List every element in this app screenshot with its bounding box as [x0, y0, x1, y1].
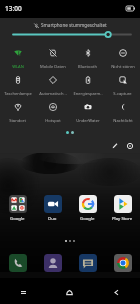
button[interactable]: Duo: [35, 195, 70, 221]
staticText: Google: [10, 215, 25, 221]
button[interactable]: WLAN: [0, 47, 35, 74]
button[interactable]: Google: [0, 195, 35, 221]
staticText: Play Store: [112, 215, 133, 221]
button[interactable]: Startbildschirm: [46, 278, 93, 304]
button[interactable]: Energiesparm..: [70, 74, 105, 101]
button[interactable]: Nachtlicht: [105, 101, 140, 128]
button[interactable]: Taschenlampe: [0, 74, 35, 101]
staticText: Hotspot: [45, 118, 61, 124]
staticText: Automatisch ..: [39, 91, 67, 97]
staticText: UnderWater: [76, 118, 100, 124]
button[interactable]: S-capture: [105, 74, 140, 101]
button[interactable]: Kontakte: [35, 254, 70, 272]
staticText: Nicht stören: [111, 64, 135, 70]
staticText: Taschenlampe: [4, 91, 32, 97]
staticText: Standort: [9, 118, 26, 124]
button[interactable]: Google: [70, 195, 105, 221]
staticText: 13:00: [5, 4, 22, 13]
button[interactable]: Bluetooth: [70, 47, 105, 74]
button[interactable]: Hotspot: [35, 101, 70, 128]
button[interactable]: Letzte Apps: [0, 278, 46, 304]
button[interactable]: Einstellungen: [124, 140, 135, 151]
button[interactable]: Mobile Daten: [35, 47, 70, 74]
button[interactable]: Automatisch ..: [35, 74, 70, 101]
button[interactable]: Volume: [13, 30, 131, 39]
button[interactable]: Nachrichten: [70, 254, 105, 272]
staticText: Duo: [48, 215, 57, 221]
button[interactable]: Bearbeiten: [109, 140, 120, 151]
staticText: Mobile Daten: [40, 64, 66, 70]
button[interactable]: Zurück: [93, 278, 140, 304]
staticText: Google: [80, 215, 95, 221]
button[interactable]: Play Store: [105, 195, 140, 221]
button[interactable]: Chrome: [105, 254, 140, 272]
button[interactable]: UnderWater: [70, 101, 105, 128]
staticText: Bluetooth: [78, 64, 97, 70]
staticText: WLAN: [12, 64, 24, 70]
staticText: S-capture: [113, 91, 132, 97]
staticText: Smartphone stummgeschaltet: [41, 22, 107, 28]
button[interactable]: Telefon: [0, 254, 35, 272]
staticText: Nachtlicht: [113, 118, 133, 124]
button[interactable]: Standort: [0, 101, 35, 128]
staticText: Energiesparm..: [73, 91, 103, 97]
button[interactable]: Nicht stören: [105, 47, 140, 74]
